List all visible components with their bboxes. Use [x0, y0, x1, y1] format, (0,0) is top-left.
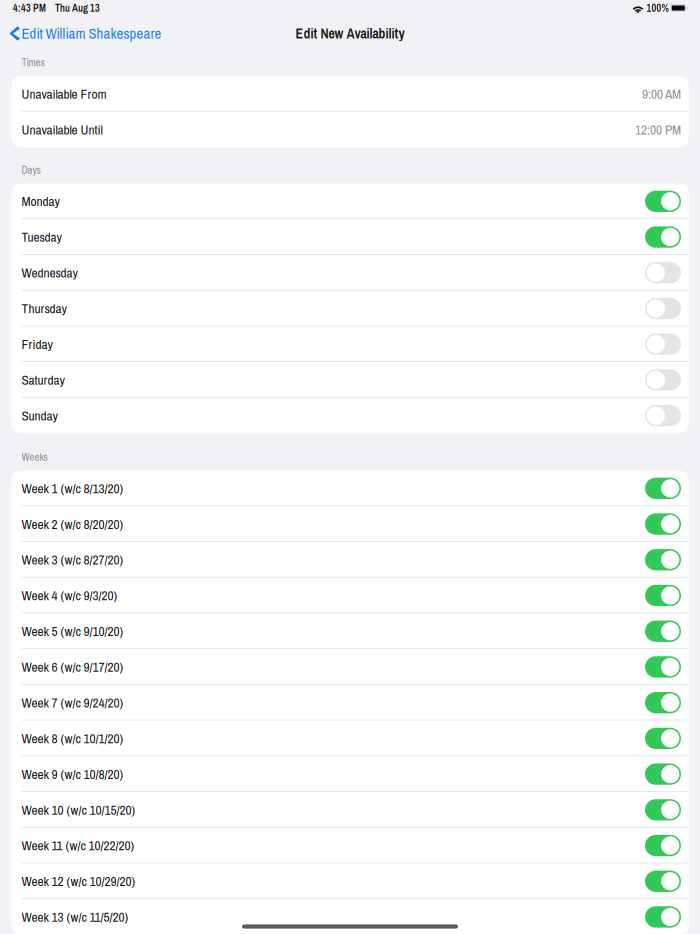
staticText: Week 6 (w/c 9/17/20): [21, 658, 123, 676]
staticText: Week 12 (w/c 10/29/20): [21, 872, 135, 890]
button[interactable]: Week 11 (w/c 10/22/20): [11, 828, 689, 863]
staticText: 4:43 PM: [13, 1, 46, 15]
button[interactable]: Week 1 (w/c 8/13/20): [11, 470, 689, 506]
button[interactable]: Week 9 (w/c 10/8/20): [11, 756, 689, 792]
staticText: Saturday: [21, 371, 64, 389]
button[interactable]: Thursday: [11, 291, 689, 326]
staticText: Weeks: [21, 450, 47, 464]
staticText: Edit New Availability: [295, 24, 404, 43]
button[interactable]: Week 7 (w/c 9/24/20): [11, 685, 689, 720]
button[interactable]: Week 13 (w/c 11/5/20): [11, 899, 689, 934]
button[interactable]: Week 6 (w/c 9/17/20): [11, 649, 689, 685]
staticText: Week 8 (w/c 10/1/20): [21, 729, 123, 747]
button[interactable]: Sunday: [11, 398, 689, 433]
staticText: Wednesday: [21, 264, 77, 282]
button[interactable]: Week 8 (w/c 10/1/20): [11, 720, 689, 756]
staticText: Week 9 (w/c 10/8/20): [21, 765, 123, 783]
staticText: Times: [21, 55, 44, 70]
button[interactable]: Week 12 (w/c 10/29/20): [11, 863, 689, 899]
staticText: Week 2 (w/c 8/20/20): [21, 515, 123, 533]
staticText: Friday: [21, 335, 52, 353]
staticText: Monday: [21, 192, 59, 210]
staticText: 9:00 AM: [642, 85, 681, 103]
staticText: Week 13 (w/c 11/5/20): [21, 908, 128, 926]
button[interactable]: Saturday: [11, 362, 689, 398]
staticText: Week 5 (w/c 9/10/20): [21, 622, 123, 640]
button[interactable]: Week 3 (w/c 8/27/20): [11, 542, 689, 578]
staticText: Thursday: [21, 299, 66, 317]
staticText: Week 11 (w/c 10/22/20): [21, 837, 134, 855]
staticText: Unavailable Until: [21, 121, 102, 139]
staticText: Edit William Shakespeare: [21, 24, 161, 43]
staticText: Week 3 (w/c 8/27/20): [21, 551, 123, 569]
staticText: Tuesday: [21, 228, 61, 246]
button[interactable]: Unavailable From: [11, 76, 689, 112]
staticText: Week 10 (w/c 10/15/20): [21, 801, 135, 819]
button[interactable]: Week 5 (w/c 9/10/20): [11, 613, 689, 649]
staticText: Unavailable From: [21, 85, 106, 103]
button[interactable]: Week 4 (w/c 9/3/20): [11, 578, 689, 613]
button[interactable]: Monday: [11, 183, 689, 219]
button[interactable]: Edit William Shakespeare: [0, 21, 167, 46]
button[interactable]: Wednesday: [11, 255, 689, 291]
staticText: Week 4 (w/c 9/3/20): [21, 586, 117, 604]
staticText: Thu Aug 13: [55, 1, 100, 15]
staticText: Sunday: [21, 407, 57, 425]
button[interactable]: Unavailable Until: [11, 112, 689, 147]
button[interactable]: Week 2 (w/c 8/20/20): [11, 506, 689, 542]
staticText: Days: [21, 163, 40, 177]
staticText: Week 7 (w/c 9/24/20): [21, 694, 123, 712]
staticText: 12:00 PM: [635, 121, 681, 139]
staticText: Week 1 (w/c 8/13/20): [21, 479, 123, 497]
button[interactable]: Tuesday: [11, 219, 689, 255]
button[interactable]: Week 10 (w/c 10/15/20): [11, 792, 689, 828]
staticText: 100%: [646, 1, 668, 15]
button[interactable]: Friday: [11, 326, 689, 362]
